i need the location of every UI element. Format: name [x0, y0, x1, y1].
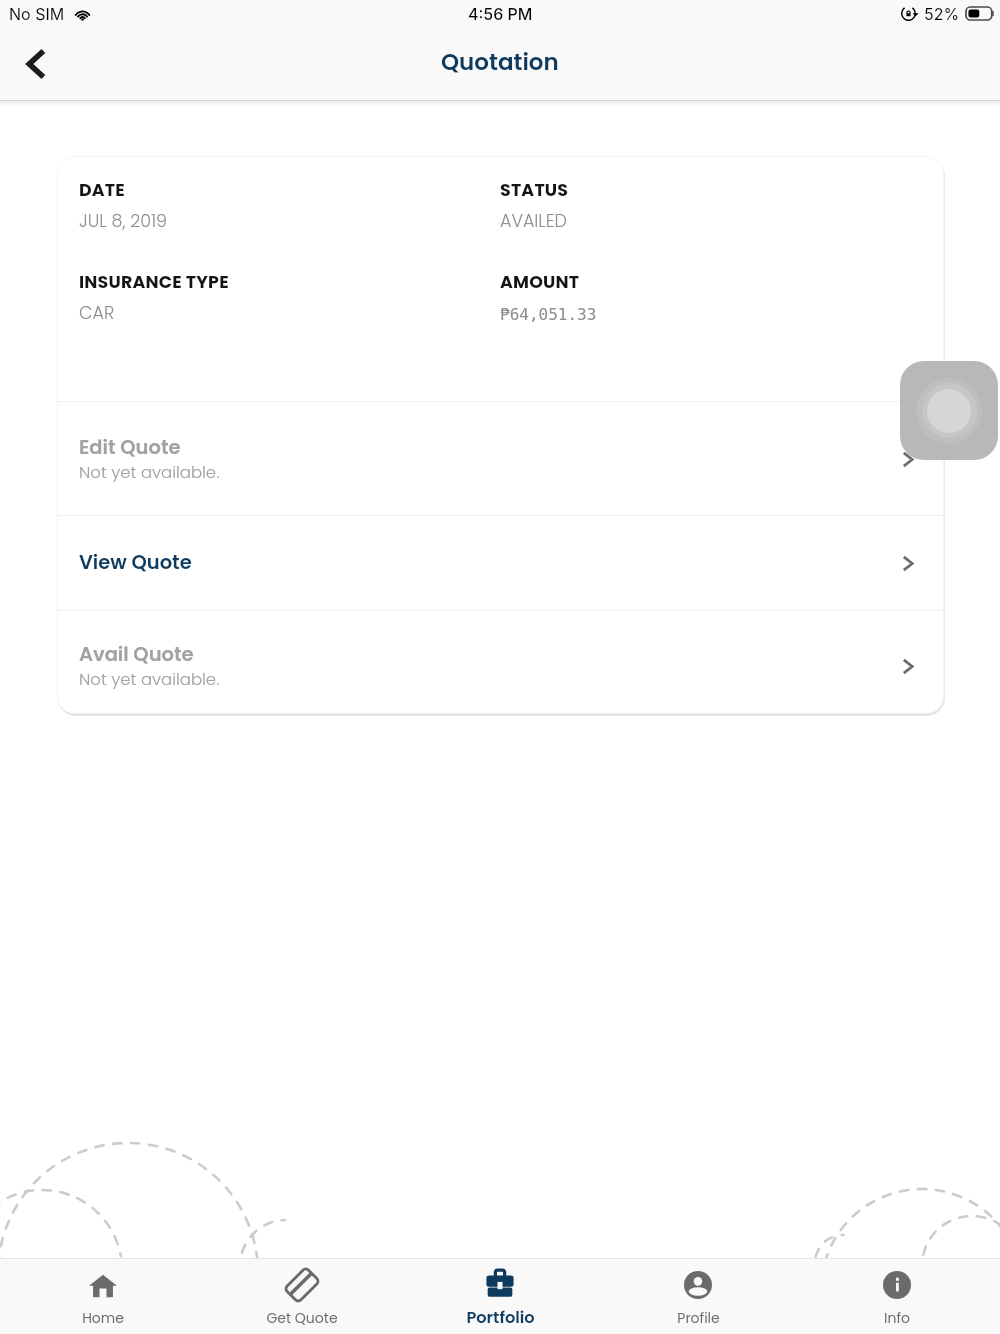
- button[interactable]: Edit Quote: [57, 402, 944, 515]
- button[interactable]: View Quote: [57, 516, 944, 610]
- staticText: Avail Quote: [79, 641, 194, 668]
- staticText: AMOUNT: [500, 270, 580, 294]
- staticText: View Quote: [79, 549, 192, 576]
- staticText: STATUS: [500, 178, 569, 202]
- staticText: No SIM: [9, 4, 65, 23]
- staticText: 4:56 PM: [468, 4, 533, 23]
- staticText: ₱64,051.33: [500, 305, 597, 324]
- staticText: INSURANCE TYPE: [79, 270, 229, 294]
- button[interactable]: Profile: [603, 1258, 793, 1334]
- button[interactable]: Get Quote: [207, 1258, 397, 1334]
- staticText: Not yet available.: [79, 461, 220, 484]
- button[interactable]: Home: [8, 1258, 198, 1334]
- staticText: Portfolio: [466, 1306, 535, 1329]
- staticText: CAR: [79, 301, 115, 326]
- staticText: JUL 8, 2019: [79, 209, 168, 234]
- staticText: Edit Quote: [79, 434, 181, 461]
- staticText: Profile: [677, 1308, 720, 1328]
- staticText: 52%: [924, 4, 960, 23]
- staticText: Home: [82, 1308, 124, 1328]
- button[interactable]: Info: [802, 1258, 992, 1334]
- staticText: Get Quote: [266, 1308, 338, 1328]
- staticText: Not yet available.: [79, 668, 220, 691]
- staticText: Info: [884, 1308, 910, 1328]
- staticText: DATE: [79, 178, 125, 202]
- other: AssistiveTouch: [900, 361, 998, 460]
- button[interactable]: Avail Quote: [57, 611, 944, 714]
- button[interactable]: Back: [5, 33, 67, 95]
- staticText: AVAILED: [500, 209, 567, 234]
- staticText: Quotation: [441, 46, 559, 78]
- button[interactable]: Portfolio: [405, 1258, 595, 1334]
